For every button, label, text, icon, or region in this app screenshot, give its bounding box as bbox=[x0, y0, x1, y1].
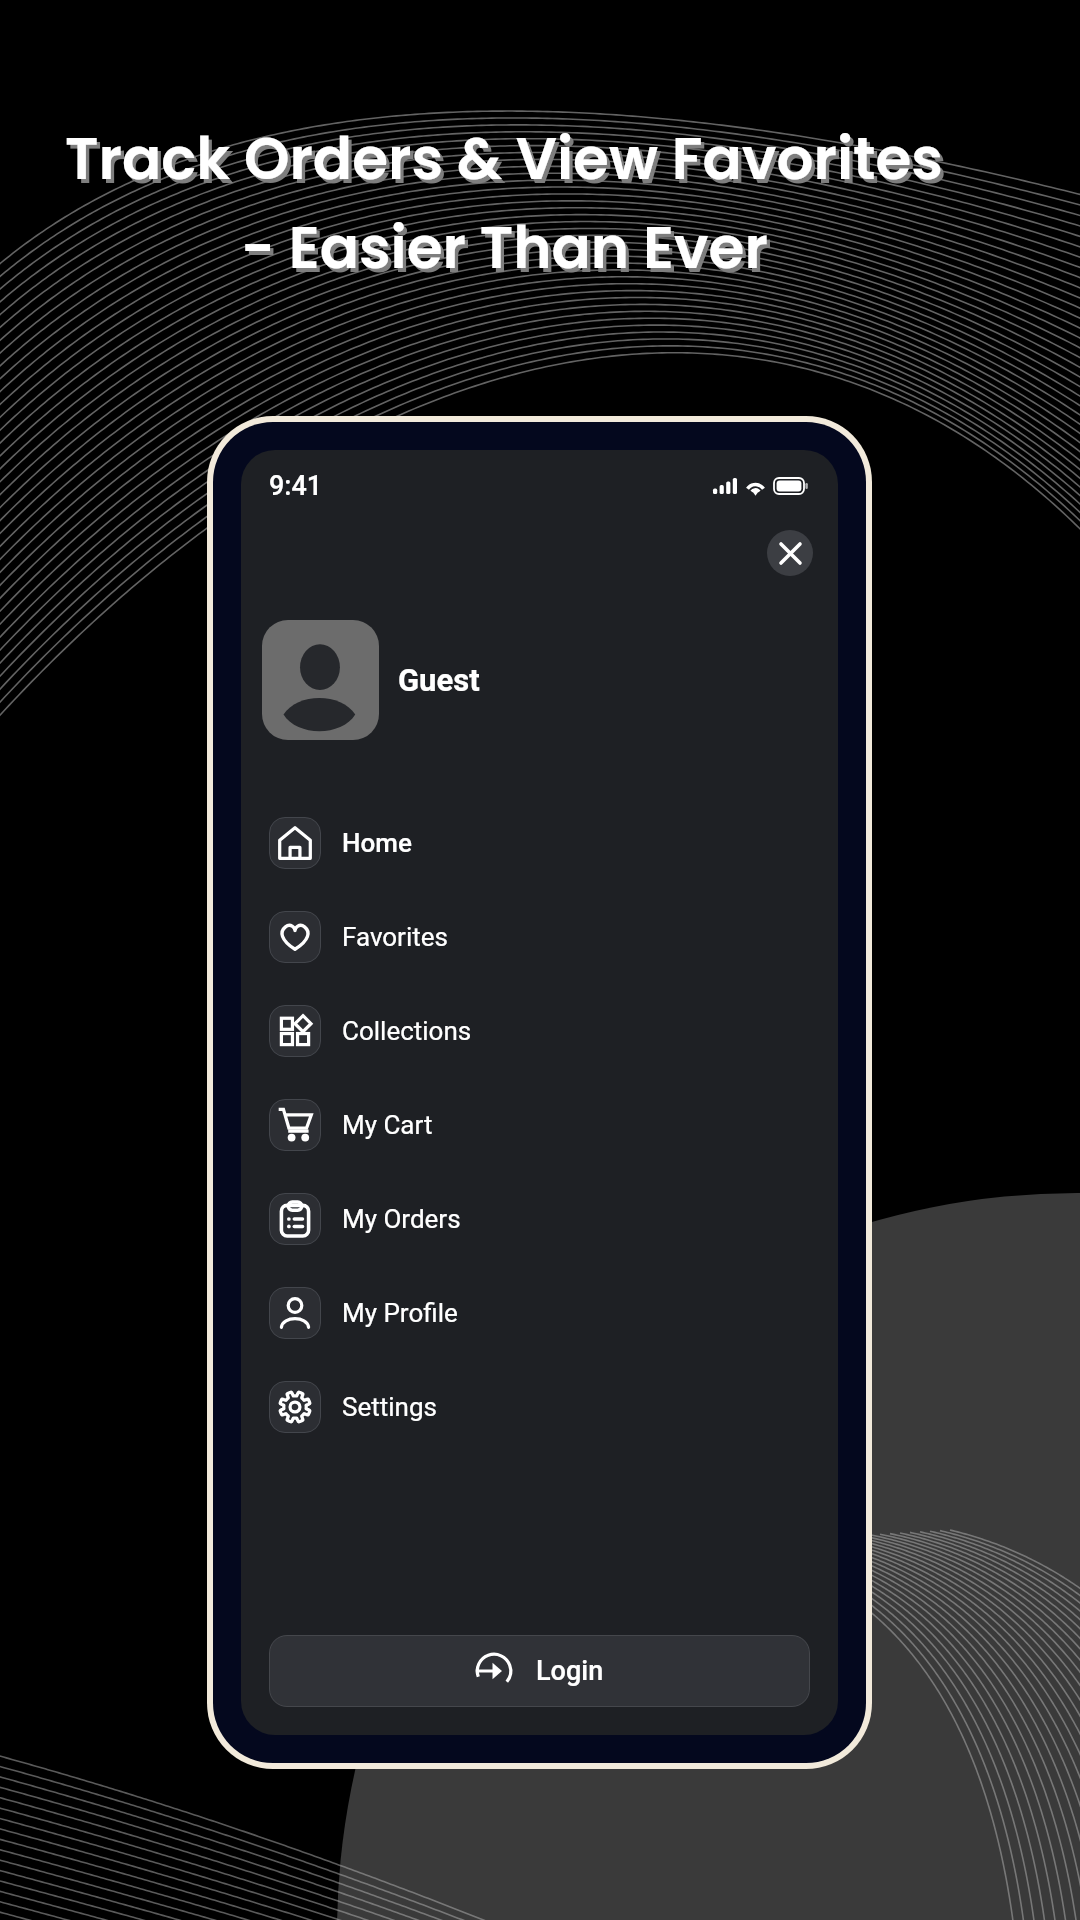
button[interactable]: Guest bbox=[262, 620, 838, 740]
button[interactable]: My Orders bbox=[269, 1172, 838, 1266]
staticText: - Easier Than Ever bbox=[241, 207, 768, 288]
button[interactable]: My Cart bbox=[269, 1078, 838, 1172]
staticText: Home bbox=[342, 828, 412, 858]
staticText: Collections bbox=[342, 1016, 472, 1046]
button[interactable]: Collections bbox=[269, 984, 838, 1078]
staticText: Login bbox=[536, 1655, 604, 1687]
button[interactable]: Home bbox=[269, 796, 838, 890]
staticText: Track Orders & View Favorites bbox=[65, 118, 943, 199]
staticText: My Orders bbox=[342, 1204, 461, 1234]
button[interactable]: Favorites bbox=[269, 890, 838, 984]
button[interactable]: Login bbox=[269, 1635, 810, 1707]
button[interactable]: Close bbox=[767, 530, 813, 576]
staticText: Settings bbox=[342, 1392, 437, 1422]
staticText: 9:41 bbox=[269, 470, 323, 502]
staticText: Favorites bbox=[342, 922, 448, 952]
button[interactable]: My Profile bbox=[269, 1266, 838, 1360]
staticText: Guest bbox=[398, 662, 480, 698]
staticText: My Cart bbox=[342, 1110, 433, 1140]
staticText: My Profile bbox=[342, 1298, 458, 1328]
button[interactable]: Settings bbox=[269, 1360, 838, 1454]
